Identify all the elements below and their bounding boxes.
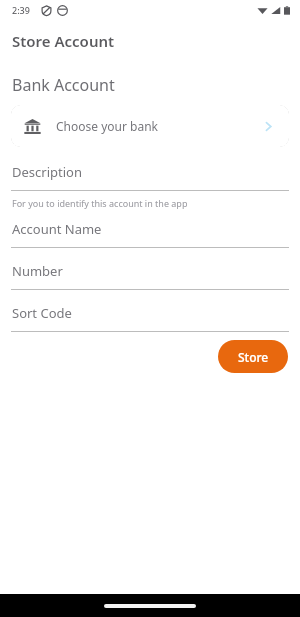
- button[interactable]: Store: [218, 340, 288, 373]
- button[interactable]: Choose your bank: [11, 105, 289, 147]
- staticText: Number: [12, 262, 63, 280]
- staticText: Choose your bank: [56, 118, 158, 134]
- staticText: Store: [238, 349, 269, 365]
- staticText: Store Account: [12, 31, 115, 51]
- staticText: For you to identify this account in the …: [12, 197, 188, 209]
- staticText: Sort Code: [12, 304, 72, 322]
- button[interactable]: Sort Code: [0, 304, 300, 332]
- staticText: 2:39: [12, 4, 30, 16]
- button[interactable]: Number: [0, 262, 300, 290]
- staticText: Description: [12, 163, 82, 181]
- button[interactable]: Account Name: [0, 220, 300, 248]
- staticText: Account Name: [12, 220, 102, 238]
- staticText: Bank Account: [12, 74, 115, 96]
- button[interactable]: Description: [0, 163, 300, 191]
